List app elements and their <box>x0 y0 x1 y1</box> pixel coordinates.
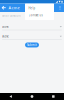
staticText: Acme <box>8 5 19 10</box>
button[interactable]: More options <box>58 5 62 10</box>
button[interactable]: Recent apps <box>43 93 64 100</box>
staticText: Contact us <box>29 13 43 17</box>
button[interactable]: Acme <box>2 33 62 40</box>
button[interactable]: Submit <box>25 42 39 47</box>
button[interactable]: Contact us <box>25 12 54 18</box>
staticText: Help <box>29 6 36 10</box>
button[interactable]: Back <box>2 5 6 10</box>
button[interactable]: Home <box>21 93 43 100</box>
button[interactable]: Help <box>25 5 54 12</box>
button[interactable]: Back <box>0 93 21 100</box>
staticText: Acme <box>2 35 9 38</box>
staticText: Enter Amount <box>2 14 21 17</box>
staticText: Acme <box>2 25 9 28</box>
button[interactable]: Acme <box>2 24 62 30</box>
staticText: Submit <box>27 43 37 47</box>
